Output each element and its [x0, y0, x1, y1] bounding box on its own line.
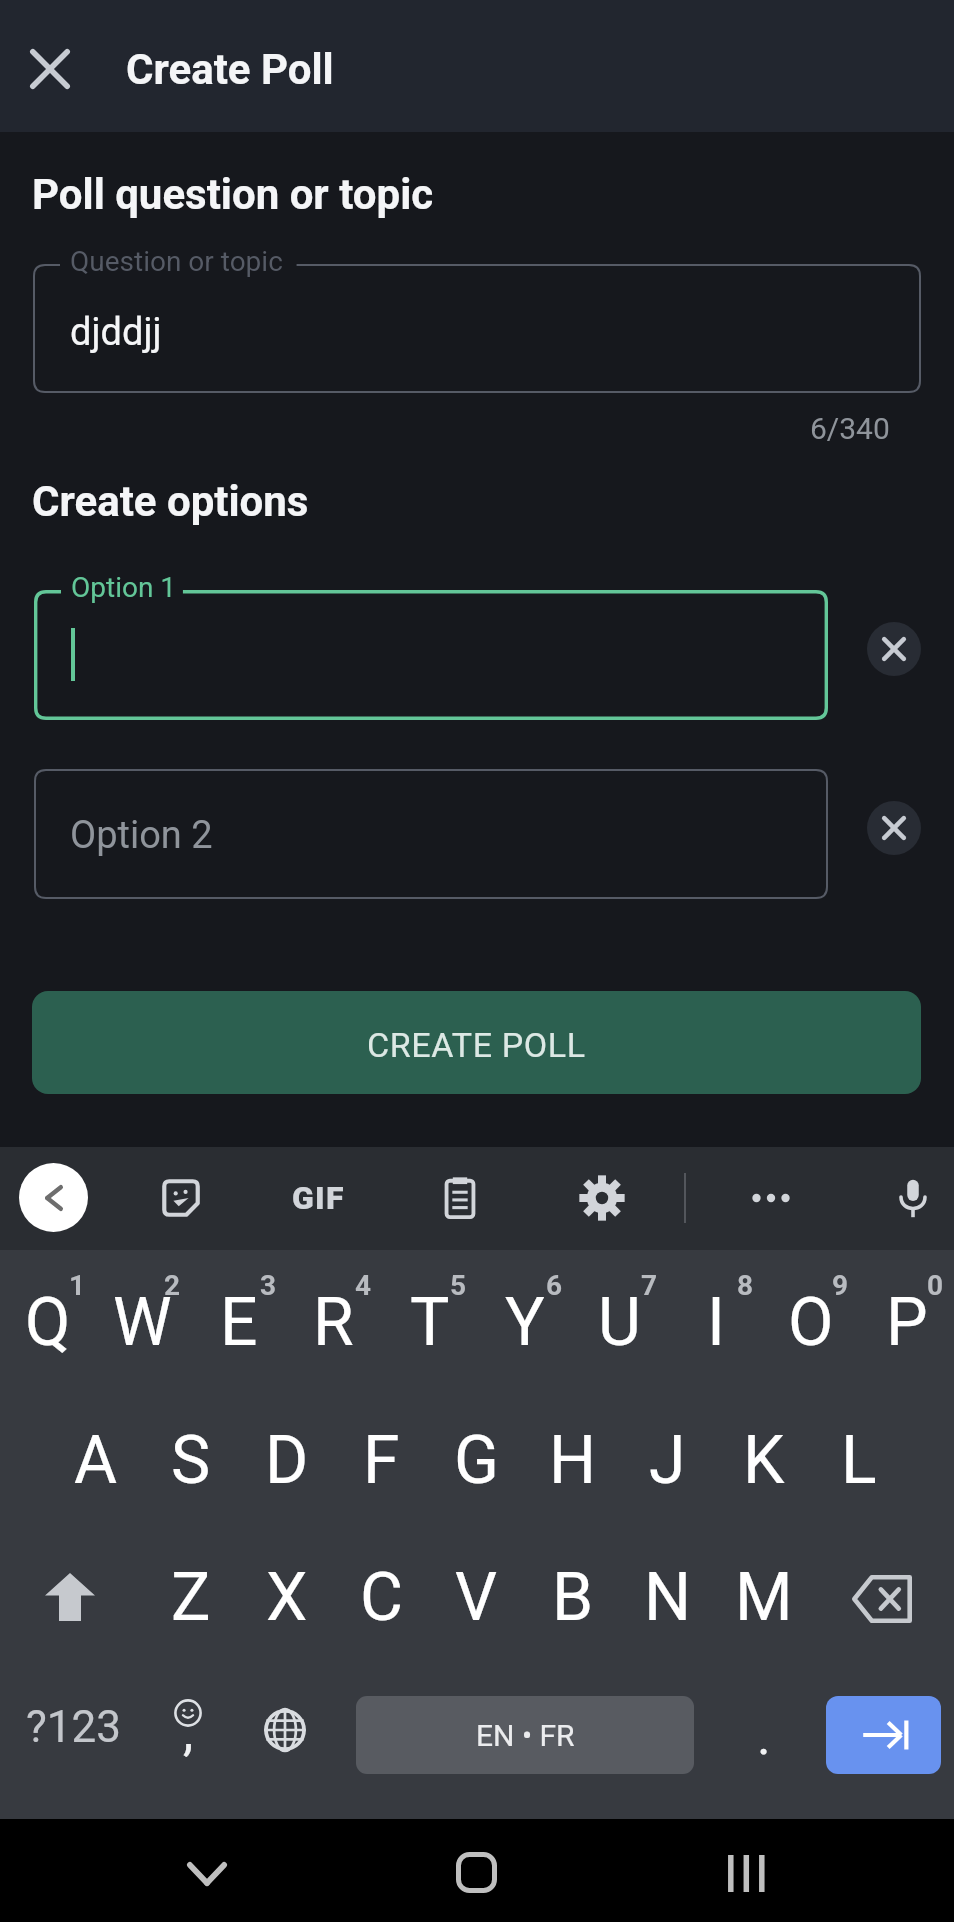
staticText: B [552, 1559, 594, 1636]
staticText: Create options [32, 477, 309, 526]
staticText: S [171, 1422, 211, 1499]
button[interactable]: Stickers [147, 1164, 215, 1232]
button[interactable]: F [334, 1391, 429, 1529]
button[interactable]: GIF [284, 1164, 352, 1232]
staticText: W [113, 1284, 172, 1361]
staticText: Option 1 [71, 571, 177, 604]
staticText: C [360, 1559, 403, 1636]
button[interactable] [34, 590, 828, 720]
button[interactable]: B [525, 1528, 620, 1666]
staticText: . [757, 1706, 771, 1767]
button[interactable]: Emoji [141, 1666, 237, 1804]
button[interactable]: Back [19, 1163, 88, 1232]
staticText: 5 [450, 1269, 467, 1302]
button[interactable]: O [763, 1253, 858, 1391]
button[interactable]: P [859, 1253, 954, 1391]
staticText: 9 [832, 1269, 849, 1302]
button[interactable]: Backspace [811, 1528, 954, 1666]
staticText: 4 [355, 1269, 372, 1302]
staticText: 0 [927, 1269, 944, 1302]
button[interactable]: Shift [0, 1528, 143, 1666]
button[interactable]: A [48, 1391, 143, 1529]
staticText: X [266, 1559, 308, 1636]
staticText: 8 [737, 1269, 754, 1302]
staticText: H [549, 1422, 597, 1499]
button[interactable]: Y [477, 1253, 572, 1391]
button[interactable]: L [811, 1391, 906, 1529]
staticText: D [265, 1422, 309, 1499]
button[interactable]: U [572, 1253, 667, 1391]
button[interactable]: V [429, 1528, 524, 1666]
button[interactable]: Remove option [867, 622, 921, 676]
button[interactable]: Enter [826, 1696, 941, 1774]
button[interactable]: K [716, 1391, 811, 1529]
staticText: 2 [164, 1269, 181, 1302]
button[interactable]: X [239, 1528, 334, 1666]
staticText: , [183, 1702, 194, 1763]
button[interactable]: Home [442, 1839, 512, 1909]
button[interactable]: H [525, 1391, 620, 1529]
staticText: Question or topic [70, 245, 283, 278]
staticText: I [707, 1284, 725, 1361]
staticText: 7 [641, 1269, 658, 1302]
button[interactable]: N [620, 1528, 715, 1666]
button[interactable]: Settings [568, 1164, 636, 1232]
button[interactable]: S [143, 1391, 238, 1529]
button[interactable]: CREATE POLL [32, 991, 921, 1094]
button[interactable]: EN • FR [356, 1696, 694, 1774]
staticText: 1 [69, 1269, 86, 1302]
staticText: Option 2 [70, 813, 213, 858]
button[interactable]: M [716, 1528, 811, 1666]
staticText: O [788, 1284, 834, 1361]
button[interactable]: R [286, 1253, 381, 1391]
button[interactable]: J [620, 1391, 715, 1529]
button[interactable]: I [668, 1253, 763, 1391]
button[interactable]: ?123 [0, 1666, 141, 1804]
staticText: Create Poll [126, 45, 334, 94]
button[interactable]: Close [11, 30, 89, 108]
button[interactable]: D [239, 1391, 334, 1529]
staticText: G [454, 1422, 499, 1499]
button[interactable]: Hide keyboard [172, 1839, 242, 1909]
staticText: K [743, 1422, 785, 1499]
staticText: T [410, 1284, 450, 1361]
staticText: P [886, 1284, 928, 1361]
button[interactable]: T [382, 1253, 477, 1391]
staticText: F [363, 1422, 400, 1499]
staticText: 6 [546, 1269, 563, 1302]
staticText: V [455, 1559, 498, 1636]
button[interactable]: Clipboard [426, 1164, 494, 1232]
staticText: Z [171, 1559, 211, 1636]
staticText: ?123 [26, 1701, 121, 1753]
button[interactable]: More options [737, 1164, 805, 1232]
staticText: E [220, 1284, 258, 1361]
staticText: Q [25, 1284, 71, 1361]
staticText: J [649, 1422, 686, 1499]
button[interactable]: W [95, 1253, 190, 1391]
button[interactable]: C [334, 1528, 429, 1666]
button[interactable]: E [191, 1253, 286, 1391]
staticText: N [644, 1559, 692, 1636]
button[interactable]: Voice input [879, 1164, 947, 1232]
staticText: U [598, 1284, 641, 1361]
button[interactable]: Option 2 [34, 769, 828, 899]
staticText: Y [505, 1284, 545, 1361]
staticText: Poll question or topic [32, 170, 434, 219]
staticText: L [841, 1422, 877, 1499]
staticText: 3 [260, 1269, 277, 1302]
button[interactable]: . [712, 1666, 812, 1804]
button[interactable]: G [429, 1391, 524, 1529]
button[interactable]: Change language [237, 1666, 335, 1804]
button[interactable]: Q [0, 1253, 95, 1391]
staticText: M [735, 1559, 793, 1636]
staticText: 6/340 [810, 411, 890, 446]
staticText: CREATE POLL [367, 1025, 586, 1065]
staticText: A [74, 1422, 118, 1499]
button[interactable]: Z [143, 1528, 238, 1666]
staticText: EN • FR [476, 1718, 575, 1753]
staticText: djddjj [70, 310, 162, 355]
button[interactable]: Recent apps [713, 1839, 783, 1909]
staticText: R [313, 1284, 354, 1361]
button[interactable]: Remove option [867, 801, 921, 855]
button[interactable]: djddjj [33, 264, 921, 393]
